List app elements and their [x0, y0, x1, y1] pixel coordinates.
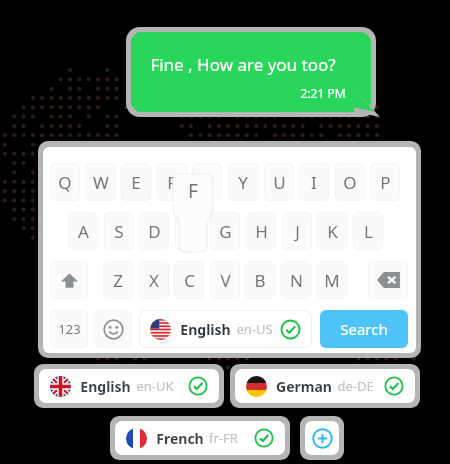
staticText: German — [276, 377, 332, 396]
button[interactable]: H — [246, 212, 276, 250]
staticText: 123 — [58, 320, 81, 338]
staticText: I — [311, 171, 317, 194]
staticText: fr-FR — [209, 429, 238, 447]
staticText: English — [80, 377, 131, 396]
staticText: English — [180, 320, 231, 339]
staticText: V — [220, 269, 231, 292]
staticText: S — [114, 220, 124, 243]
button[interactable]: Q — [50, 163, 80, 201]
staticText: Q — [58, 171, 72, 194]
staticText: X — [149, 269, 159, 292]
staticText: E — [131, 171, 141, 194]
button[interactable]: P — [370, 163, 400, 201]
button[interactable]: O — [335, 163, 365, 201]
staticText: en-US — [236, 320, 273, 338]
staticText: Fine , How are you too? — [150, 53, 336, 76]
button[interactable]: V — [210, 261, 240, 299]
button[interactable]: Emoji — [94, 310, 132, 348]
staticText: 2:21 PM — [300, 85, 346, 101]
staticText: W — [93, 171, 109, 194]
button[interactable]: German — [235, 369, 415, 403]
button[interactable]: Z — [103, 261, 133, 299]
staticText: C — [184, 269, 195, 292]
button[interactable]: J — [282, 212, 312, 250]
button[interactable]: Delete — [368, 261, 408, 299]
button[interactable]: M — [317, 261, 347, 299]
staticText: A — [78, 220, 89, 243]
staticText: J — [295, 220, 300, 243]
button[interactable]: I — [299, 163, 329, 201]
button[interactable]: English — [139, 310, 312, 348]
button[interactable]: B — [245, 261, 275, 299]
button[interactable]: S — [104, 212, 134, 250]
staticText: K — [327, 220, 338, 243]
staticText: O — [343, 171, 357, 194]
button[interactable]: N — [281, 261, 311, 299]
button[interactable]: English — [39, 369, 219, 403]
button[interactable]: Y — [228, 163, 258, 201]
staticText: N — [290, 269, 303, 292]
button[interactable]: R — [157, 163, 187, 201]
staticText: Y — [238, 171, 248, 194]
button[interactable]: L — [353, 212, 383, 250]
staticText: P — [380, 171, 391, 194]
staticText: Search — [340, 319, 388, 339]
staticText: G — [219, 220, 232, 243]
staticText: M — [324, 269, 340, 292]
staticText: R — [167, 171, 178, 194]
staticText: F — [188, 178, 198, 204]
button[interactable]: Add language — [305, 421, 339, 455]
staticText: French — [156, 429, 204, 448]
staticText: U — [273, 171, 286, 194]
button[interactable]: Search — [320, 310, 408, 348]
button[interactable]: T — [192, 163, 222, 201]
button[interactable]: U — [264, 163, 294, 201]
staticText: Z — [113, 269, 123, 292]
button[interactable]: G — [210, 212, 240, 250]
staticText: en-UK — [136, 377, 174, 395]
staticText: de-DE — [337, 377, 374, 395]
button[interactable]: C — [174, 261, 204, 299]
button[interactable]: W — [86, 163, 116, 201]
button[interactable]: X — [139, 261, 169, 299]
button[interactable]: Shift — [50, 261, 88, 299]
staticText: D — [148, 220, 161, 243]
button[interactable]: French — [115, 421, 285, 455]
button[interactable]: Fine , How are you too? — [131, 32, 371, 112]
staticText: B — [254, 269, 266, 292]
staticText: H — [255, 220, 268, 243]
button[interactable]: K — [317, 212, 347, 250]
button[interactable]: D — [139, 212, 169, 250]
button[interactable]: E — [121, 163, 151, 201]
button[interactable]: A — [68, 212, 98, 250]
button[interactable]: 123 — [50, 310, 88, 348]
staticText: L — [364, 220, 373, 243]
